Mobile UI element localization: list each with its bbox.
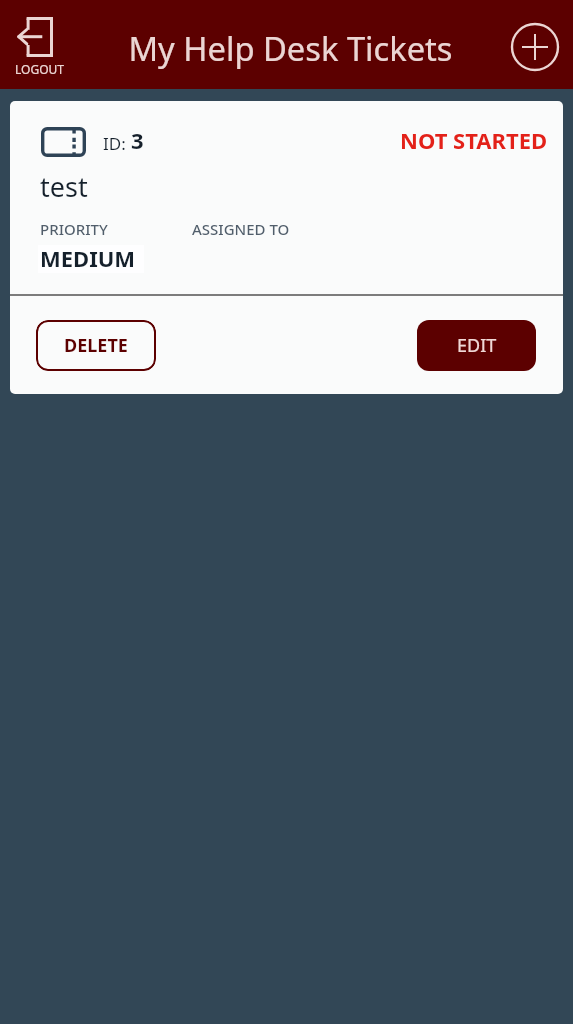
staticText: EDIT: [457, 333, 497, 358]
button[interactable]: EDIT: [417, 320, 536, 371]
staticText: MEDIUM: [40, 243, 136, 273]
staticText: ID:: [103, 132, 131, 155]
button[interactable]: LOGOUT: [3, 10, 68, 84]
staticText: LOGOUT: [15, 61, 64, 77]
staticText: ASSIGNED TO: [192, 219, 290, 239]
staticText: 3: [131, 125, 144, 155]
staticText: NOT STARTED: [400, 125, 548, 155]
staticText: My Help Desk Tickets: [128, 26, 453, 71]
staticText: PRIORITY: [40, 219, 108, 239]
button[interactable]: DELETE: [36, 320, 156, 371]
button[interactable]: Add ticket: [510, 22, 560, 72]
staticText: test: [40, 168, 88, 205]
staticText: DELETE: [64, 333, 128, 358]
